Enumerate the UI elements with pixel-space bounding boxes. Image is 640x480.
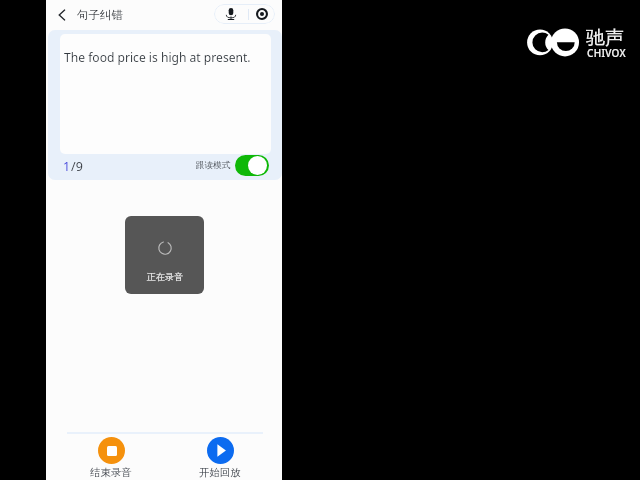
staticText: 1: [63, 158, 71, 175]
button[interactable]: 结束录音: [83, 437, 139, 479]
staticText: /9: [71, 158, 83, 175]
staticText: 句子纠错: [77, 8, 123, 22]
button[interactable]: 开始回放: [192, 437, 248, 479]
button[interactable]: Record: [249, 4, 275, 24]
button[interactable]: Follow-read mode toggle: [235, 155, 269, 176]
staticText: CHIVOX: [587, 46, 626, 60]
staticText: 跟读模式: [196, 160, 231, 171]
staticText: 正在录音: [147, 271, 183, 282]
staticText: 驰声: [586, 26, 624, 50]
staticText: 结束录音: [90, 466, 132, 479]
staticText: The food price is high at present.: [64, 49, 251, 65]
button[interactable]: Microphone: [214, 4, 248, 24]
button[interactable]: Back: [51, 4, 73, 26]
staticText: 开始回放: [199, 466, 241, 479]
